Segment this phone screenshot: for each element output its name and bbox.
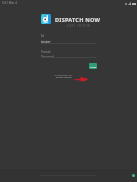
button[interactable]: Login <box>89 63 97 69</box>
staticText: Login <box>90 65 97 68</box>
staticText: FLEET EDITION <box>67 24 91 28</box>
staticText: Id <box>41 34 45 38</box>
staticText: POWERED BY <box>55 73 73 76</box>
staticText: 9:41 Mar 4 <box>2 1 17 5</box>
staticText: DISPATCH NOW <box>55 16 101 24</box>
staticText: Tenant <box>41 50 51 54</box>
staticText: tester <box>41 39 51 44</box>
staticText: Password <box>41 55 54 59</box>
staticText: FLEETLOGIX <box>56 76 73 79</box>
button[interactable]: Id <box>41 33 96 44</box>
button[interactable]: Dispatch Now logo <box>41 14 51 24</box>
button[interactable]: Connection status <box>130 172 137 179</box>
button[interactable]: Password <box>41 48 96 58</box>
